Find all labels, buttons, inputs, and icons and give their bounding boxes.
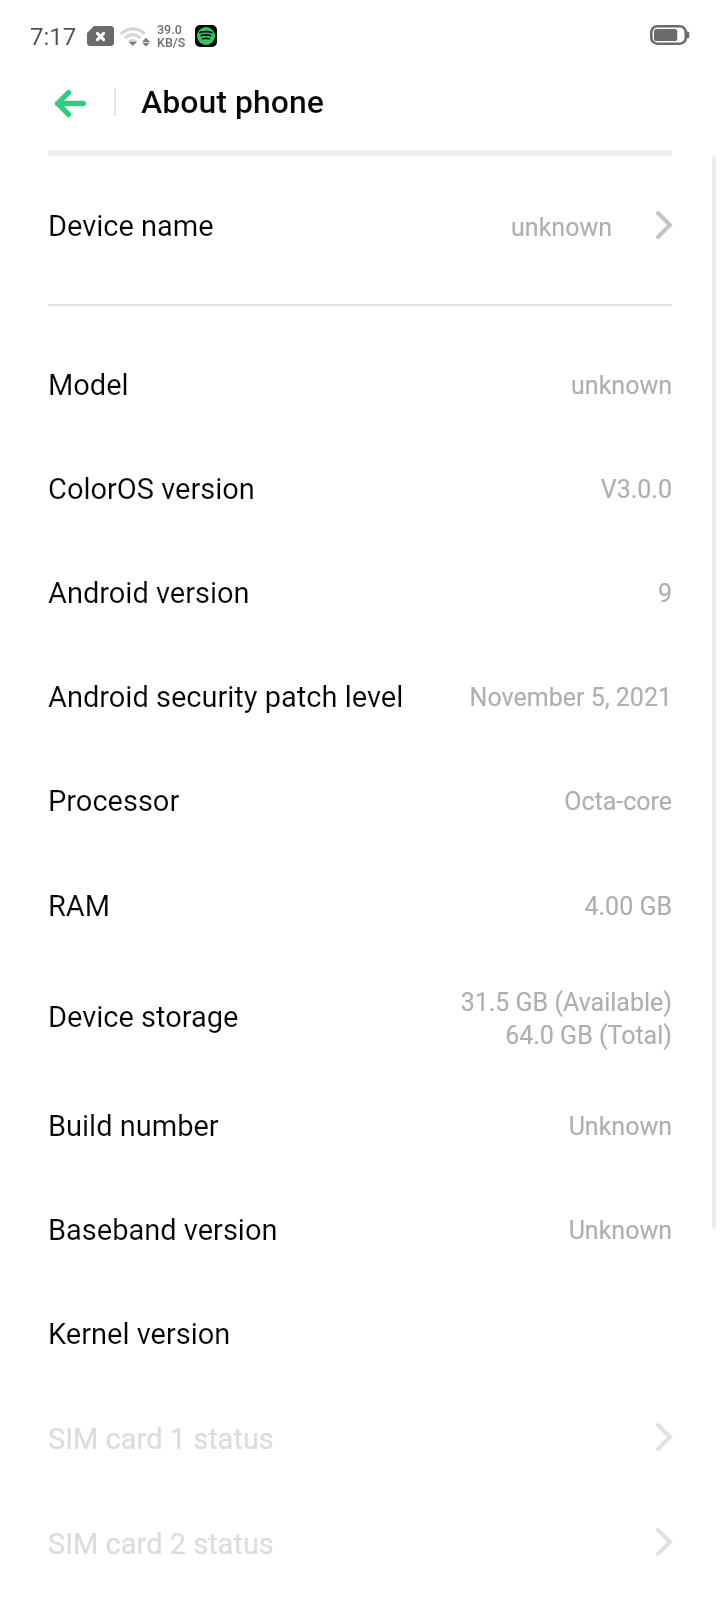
button[interactable]: RAM bbox=[0, 853, 720, 958]
staticText: 31.5 GB (Available) 64.0 GB (Total) bbox=[242, 988, 672, 1050]
staticText: V3.0.0 bbox=[242, 475, 672, 504]
button[interactable]: SIM card 2 status bbox=[0, 1491, 720, 1596]
staticText: 4.00 GB bbox=[242, 892, 672, 921]
button[interactable]: Processor bbox=[0, 748, 720, 853]
staticText: Kernel version bbox=[48, 1317, 231, 1351]
button[interactable]: Back bbox=[42, 75, 98, 131]
staticText: Unknown bbox=[242, 1216, 672, 1245]
button[interactable]: Android version bbox=[0, 540, 720, 645]
staticText: Device storage bbox=[48, 1000, 239, 1034]
button[interactable]: Device name bbox=[0, 156, 720, 304]
staticText: About phone bbox=[141, 83, 324, 121]
button[interactable]: Baseband version bbox=[0, 1177, 720, 1282]
button[interactable]: Device storage bbox=[0, 964, 720, 1069]
button[interactable]: Build number bbox=[0, 1073, 720, 1178]
staticText: 9 bbox=[242, 579, 672, 608]
staticText: Model bbox=[48, 368, 129, 402]
staticText: November 5, 2021 bbox=[242, 683, 672, 712]
button[interactable]: ColorOS version bbox=[0, 436, 720, 541]
staticText: Device name bbox=[48, 209, 214, 243]
staticText: Android version bbox=[48, 576, 250, 610]
staticText: Android security patch level bbox=[48, 680, 404, 714]
staticText: ColorOS version bbox=[48, 472, 255, 506]
staticText: KB/S bbox=[157, 35, 186, 50]
staticText: Unknown bbox=[242, 1112, 672, 1141]
staticText: Processor bbox=[48, 784, 180, 818]
staticText: unknown bbox=[242, 371, 672, 400]
staticText: SIM card 1 status bbox=[48, 1422, 274, 1456]
button[interactable]: Kernel version bbox=[0, 1281, 720, 1386]
staticText: SIM card 2 status bbox=[48, 1527, 274, 1561]
staticText: unknown bbox=[182, 213, 612, 242]
button[interactable]: Model bbox=[0, 332, 720, 437]
staticText: RAM bbox=[48, 889, 111, 923]
staticText: Baseband version bbox=[48, 1213, 278, 1247]
button[interactable]: Android security patch level bbox=[0, 644, 720, 749]
staticText: 7:17 bbox=[30, 23, 77, 51]
staticText: Octa-core bbox=[242, 787, 672, 816]
staticText: 39.0 bbox=[157, 22, 182, 37]
button[interactable]: SIM card 1 status bbox=[0, 1386, 720, 1491]
staticText: Build number bbox=[48, 1109, 219, 1143]
